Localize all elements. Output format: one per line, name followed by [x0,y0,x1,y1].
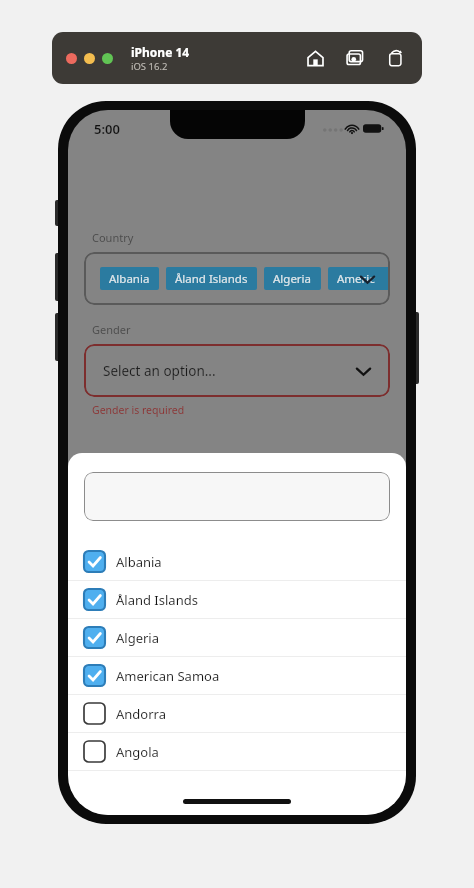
staticText: Albania [116,553,162,571]
button[interactable]: Albania [100,267,159,290]
staticText: Gender is required [92,403,185,417]
staticText: Select an option... [103,362,216,380]
staticText: Angola [116,743,159,761]
button[interactable]: Algeria [68,619,406,656]
other: Expand [352,360,374,382]
staticText: 5:00 [94,120,120,138]
staticText: Albania [109,271,150,287]
other: Expand [357,269,377,289]
staticText: Country [92,230,134,245]
staticText: iOS 16.2 [131,60,168,73]
button[interactable]: Åland Islands [166,267,257,290]
button[interactable]: Albania [84,252,390,305]
staticText: American Samoa [116,667,220,685]
button[interactable]: Rotate [382,45,408,71]
staticText: iPhone 14 [131,44,190,60]
button[interactable]: Andorra [68,695,406,732]
button[interactable]: Åland Islands [68,581,406,618]
button[interactable]: Algeria [264,267,321,290]
button[interactable]: American Samoa [68,657,406,694]
button[interactable] [84,472,390,521]
button[interactable]: Select an option... [84,344,390,397]
button[interactable]: American Samoa [328,267,390,290]
button[interactable]: Screenshot [342,45,368,71]
staticText: Andorra [116,705,166,723]
staticText: Åland Islands [175,271,248,287]
button[interactable]: Angola [68,733,406,770]
staticText: Algeria [273,271,312,287]
button[interactable]: Home [302,45,328,71]
staticText: Gender [92,322,131,337]
staticText: Åland Islands [116,591,198,609]
button[interactable]: Albania [68,543,406,580]
staticText: American Samoa [337,271,381,287]
staticText: Algeria [116,629,160,647]
